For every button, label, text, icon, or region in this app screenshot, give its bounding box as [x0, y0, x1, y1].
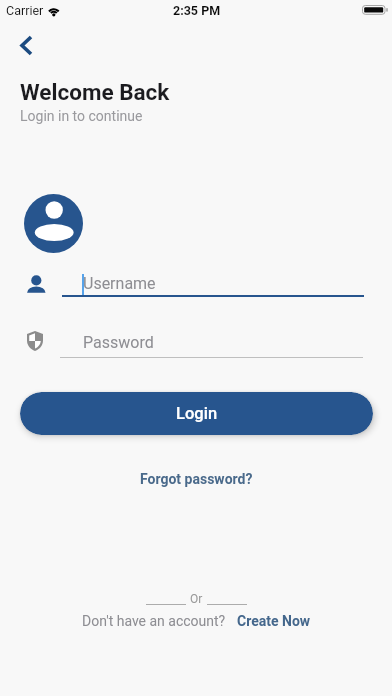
staticText: Welcome Back	[20, 79, 170, 105]
staticText: Password	[83, 333, 154, 352]
button[interactable]	[20, 268, 370, 299]
button[interactable]: Create Now	[237, 613, 311, 629]
button[interactable]: Forgot password?	[140, 471, 253, 487]
button[interactable]	[10, 26, 46, 62]
button[interactable]: Login	[20, 392, 373, 435]
button[interactable]	[20, 328, 370, 359]
staticText: Login in to continue	[20, 108, 143, 124]
staticText: 2:35 PM	[173, 3, 221, 18]
staticText: Login	[176, 404, 218, 423]
staticText: Carrier	[6, 3, 44, 18]
staticText: Forgot password?	[140, 471, 253, 487]
staticText: Username	[83, 274, 156, 293]
staticText: Don't have an account?	[82, 613, 226, 629]
staticText: Create Now	[237, 613, 311, 629]
staticText: Or	[190, 592, 203, 606]
